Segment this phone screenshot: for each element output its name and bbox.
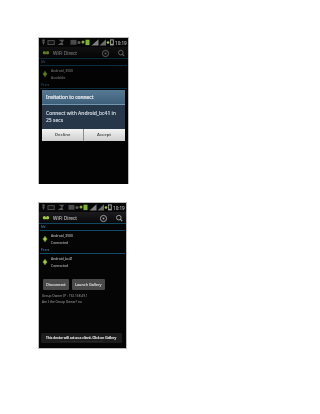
button[interactable]: Settings xyxy=(98,213,108,223)
staticText: WiFi Direct xyxy=(53,215,78,222)
button[interactable]: Search xyxy=(116,48,126,58)
staticText: Am I the Group Owner? no xyxy=(42,300,82,304)
button[interactable]: WiFi Direct xyxy=(39,212,126,223)
staticText: This device will act as a client. Click … xyxy=(46,335,117,339)
button[interactable]: Android_3500 xyxy=(41,66,128,82)
button[interactable]: Settings xyxy=(100,48,110,58)
staticText: 10:19 xyxy=(115,40,127,46)
staticText: Invitation to connect xyxy=(46,94,94,101)
staticText: Peers xyxy=(41,83,50,87)
staticText: Decline xyxy=(55,132,71,138)
staticText: Android_bc41 xyxy=(51,256,73,261)
staticText: Me xyxy=(41,225,46,229)
button[interactable]: Android_3500 xyxy=(41,231,126,247)
staticText: Android_3500 xyxy=(51,233,73,238)
staticText: Group Owner IP : 192.168.49.1 xyxy=(42,294,88,298)
staticText: Me xyxy=(41,60,46,64)
button[interactable]: WiFi Direct xyxy=(39,47,128,58)
staticText: Accept xyxy=(97,132,112,138)
staticText: Launch Gallery xyxy=(75,282,102,287)
button[interactable]: Search xyxy=(114,213,124,223)
staticText: Connect with Android_bc41 in 25 secs xyxy=(46,110,116,124)
staticText: Connected xyxy=(51,240,69,245)
staticText: WiFi Direct xyxy=(53,50,78,57)
staticText: Connected xyxy=(51,263,69,268)
button[interactable]: Disconnect xyxy=(46,279,66,290)
button[interactable]: Decline xyxy=(42,129,83,141)
button[interactable]: Android_bc41 xyxy=(41,254,126,270)
staticText: Android_3500 xyxy=(51,68,73,73)
button[interactable]: Accept xyxy=(84,129,125,141)
button[interactable]: Launch Gallery xyxy=(75,279,102,290)
staticText: Disconnect xyxy=(46,282,66,287)
staticText: Available xyxy=(51,75,66,80)
staticText: 10:19 xyxy=(113,205,125,211)
staticText: button to send a file to the remote file… xyxy=(60,339,104,342)
staticText: Peers xyxy=(41,248,50,252)
